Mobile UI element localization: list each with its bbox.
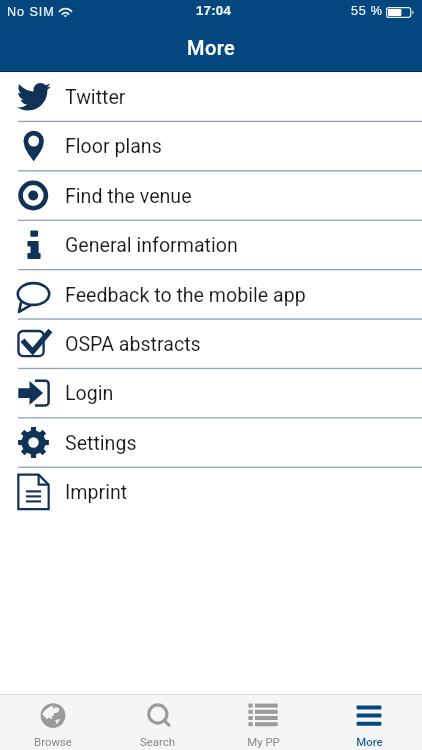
button[interactable]: Floor plans xyxy=(0,121,422,170)
staticText: 55 % xyxy=(351,4,383,18)
button[interactable]: My PP xyxy=(210,695,316,750)
button[interactable]: Login xyxy=(0,368,422,417)
staticText: More xyxy=(356,735,383,748)
button[interactable]: General information xyxy=(0,220,422,269)
staticText: Twitter xyxy=(65,86,126,109)
button[interactable]: Settings xyxy=(0,418,422,467)
staticText: Find the venue xyxy=(65,185,192,208)
staticText: More xyxy=(187,36,236,59)
staticText: OSPA abstracts xyxy=(65,333,201,356)
staticText: Feedback to the mobile app xyxy=(65,284,306,307)
button[interactable]: OSPA abstracts xyxy=(0,319,422,368)
staticText: My PP xyxy=(247,735,280,748)
staticText: Floor plans xyxy=(65,135,162,158)
staticText: Imprint xyxy=(65,481,128,504)
button[interactable]: Twitter xyxy=(0,72,422,121)
staticText: Browse xyxy=(34,735,72,748)
staticText: Login xyxy=(65,382,114,405)
staticText: Settings xyxy=(65,432,137,455)
button[interactable]: Imprint xyxy=(0,467,422,516)
staticText: No SIM xyxy=(7,5,55,19)
staticText: 17:04 xyxy=(196,3,232,18)
button[interactable]: Feedback to the mobile app xyxy=(0,270,422,319)
button[interactable]: More xyxy=(316,695,422,750)
staticText: General information xyxy=(65,234,238,257)
button[interactable]: Search xyxy=(105,695,210,750)
staticText: Search xyxy=(140,735,175,748)
button[interactable]: Browse xyxy=(0,695,105,750)
button[interactable]: Find the venue xyxy=(0,171,422,220)
